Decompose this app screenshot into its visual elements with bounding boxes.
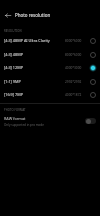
button[interactable]: [1:1] 9MP [0, 75, 100, 88]
staticText: [4:3] 48MP AI Ultra Clarity [4, 38, 50, 43]
staticText: [16:9] 7MP [4, 92, 23, 97]
button[interactable]: [16:9] 7MP [0, 88, 100, 101]
staticText: PHOTO FORMAT [4, 108, 26, 112]
staticText: RESOLUTION [4, 29, 22, 33]
staticText: 4000*3000 [65, 66, 82, 70]
staticText: 4000*1872 [65, 93, 82, 97]
button[interactable]: [4:3] 48MP AI Ultra Clarity [0, 34, 100, 47]
staticText: 2992*2992 [65, 80, 82, 84]
staticText: [4:3] 48MP [4, 52, 23, 57]
staticText: 8000*6000 [65, 53, 82, 57]
staticText: Photo resolution [15, 12, 51, 18]
button[interactable]: [4:3] 12MP [0, 61, 100, 74]
staticText: RAW format [4, 116, 26, 121]
button[interactable]: RAW format [0, 112, 100, 130]
staticText: [4:3] 12MP [4, 65, 23, 70]
button[interactable]: [4:3] 48MP [0, 48, 100, 61]
staticText: Only supported in pro mode [4, 123, 44, 127]
staticText: [1:1] 9MP [4, 79, 21, 84]
staticText: 8000*6000 [65, 39, 82, 43]
button[interactable]: Back [0, 6, 15, 24]
